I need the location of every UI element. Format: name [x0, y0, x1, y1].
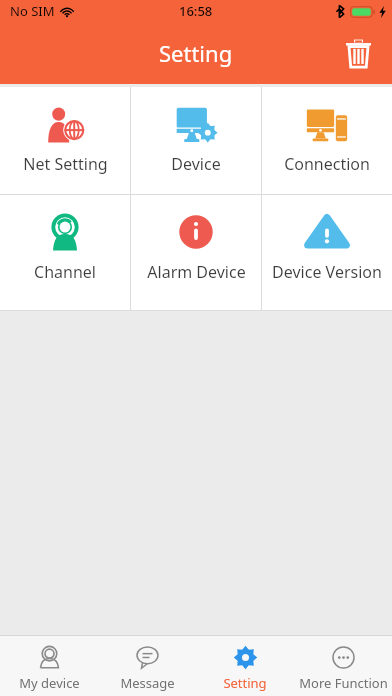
staticText: No SIM — [10, 2, 55, 20]
button[interactable]: Alarm Device — [131, 195, 261, 310]
staticText: 16:58 — [179, 2, 213, 20]
button[interactable]: Net Setting — [0, 87, 130, 194]
staticText: Connection Mode — [262, 153, 392, 175]
staticText: Setting — [159, 38, 233, 68]
button[interactable]: Delete — [336, 31, 380, 75]
button[interactable]: Setting — [196, 636, 294, 696]
button[interactable]: Connection Mode — [262, 87, 392, 194]
staticText: More Function — [299, 674, 388, 692]
staticText: My device — [19, 674, 80, 692]
button[interactable]: Message — [98, 636, 196, 696]
staticText: Message — [120, 674, 175, 692]
staticText: Net Setting — [23, 153, 108, 175]
button[interactable]: Channel — [0, 195, 130, 310]
button[interactable]: My device — [0, 636, 98, 696]
staticText: Device Version — [272, 261, 382, 283]
staticText: Setting — [223, 674, 267, 692]
button[interactable]: Device Version — [262, 195, 392, 310]
button[interactable]: Device — [131, 87, 261, 194]
staticText: Device — [171, 153, 221, 175]
staticText: Alarm Device — [147, 261, 246, 283]
button[interactable]: More Function — [294, 636, 392, 696]
staticText: Channel — [34, 261, 96, 283]
